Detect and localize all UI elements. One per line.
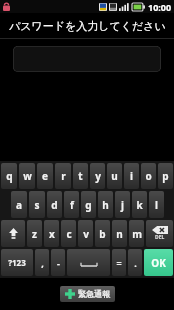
staticText: q [6, 169, 13, 183]
staticText: m [132, 227, 142, 241]
button[interactable]: s [29, 191, 45, 218]
staticText: y [95, 169, 101, 183]
button[interactable]: ?123 [1, 249, 33, 276]
staticText: f [70, 198, 74, 212]
button[interactable]: , [35, 249, 49, 276]
button[interactable]: y [90, 163, 105, 189]
staticText: u [111, 169, 118, 183]
button[interactable]: a [11, 191, 27, 218]
button[interactable]: 緊急通報 [60, 286, 115, 302]
button[interactable]: k [132, 191, 147, 218]
staticText: h [102, 198, 109, 212]
staticText: DEL [155, 234, 165, 241]
button[interactable]: m [129, 220, 144, 247]
staticText: 緊急通報 [78, 289, 110, 299]
staticText: s [34, 198, 40, 212]
button[interactable]: . [128, 249, 142, 276]
button[interactable]: c [61, 220, 76, 247]
button[interactable]: n [112, 220, 127, 247]
button[interactable]: r [55, 163, 71, 189]
staticText: a [16, 198, 22, 212]
button[interactable]: g [81, 191, 96, 218]
button[interactable]: w [19, 163, 35, 189]
staticText: - [57, 257, 60, 269]
button[interactable]: Delete [146, 220, 173, 247]
staticText: o [145, 169, 152, 183]
staticText: = [116, 257, 122, 269]
staticText: ?123 [8, 257, 26, 268]
button[interactable]: Space [67, 249, 110, 276]
button[interactable]: j [115, 191, 130, 218]
button[interactable]: - [51, 249, 65, 276]
button[interactable]: o [141, 163, 156, 189]
staticText: . [134, 257, 137, 269]
staticText: i [130, 169, 133, 183]
staticText: b [99, 227, 106, 241]
button[interactable]: Shift [1, 220, 25, 247]
staticText: c [66, 227, 72, 241]
staticText: p [162, 169, 169, 183]
button[interactable] [13, 46, 161, 72]
staticText: x [49, 227, 55, 241]
button[interactable]: z [27, 220, 42, 247]
button[interactable]: x [44, 220, 59, 247]
staticText: e [42, 169, 48, 183]
button[interactable]: OK [144, 249, 173, 276]
staticText: v [83, 227, 89, 241]
staticText: j [121, 198, 124, 212]
staticText: n [116, 227, 123, 241]
staticText: g [85, 198, 92, 212]
button[interactable]: p [158, 163, 173, 189]
button[interactable]: e [37, 163, 53, 189]
staticText: 10:00 [148, 1, 172, 13]
staticText: パスワードを入力してください [9, 19, 166, 33]
button[interactable]: h [98, 191, 113, 218]
button[interactable]: t [73, 163, 88, 189]
staticText: l [155, 198, 158, 212]
button[interactable]: l [149, 191, 164, 218]
staticText: , [41, 257, 44, 269]
staticText: k [136, 198, 143, 212]
staticText: r [61, 169, 66, 183]
button[interactable]: = [112, 249, 126, 276]
staticText: z [32, 227, 37, 241]
button[interactable]: d [47, 191, 62, 218]
button[interactable]: b [95, 220, 110, 247]
button[interactable]: v [78, 220, 93, 247]
button[interactable]: u [107, 163, 122, 189]
button[interactable]: f [64, 191, 79, 218]
staticText: w [23, 169, 32, 183]
staticText: OK [151, 256, 166, 270]
button[interactable]: i [124, 163, 139, 189]
staticText: d [51, 198, 58, 212]
staticText: t [78, 169, 83, 183]
button[interactable]: q [1, 163, 17, 189]
